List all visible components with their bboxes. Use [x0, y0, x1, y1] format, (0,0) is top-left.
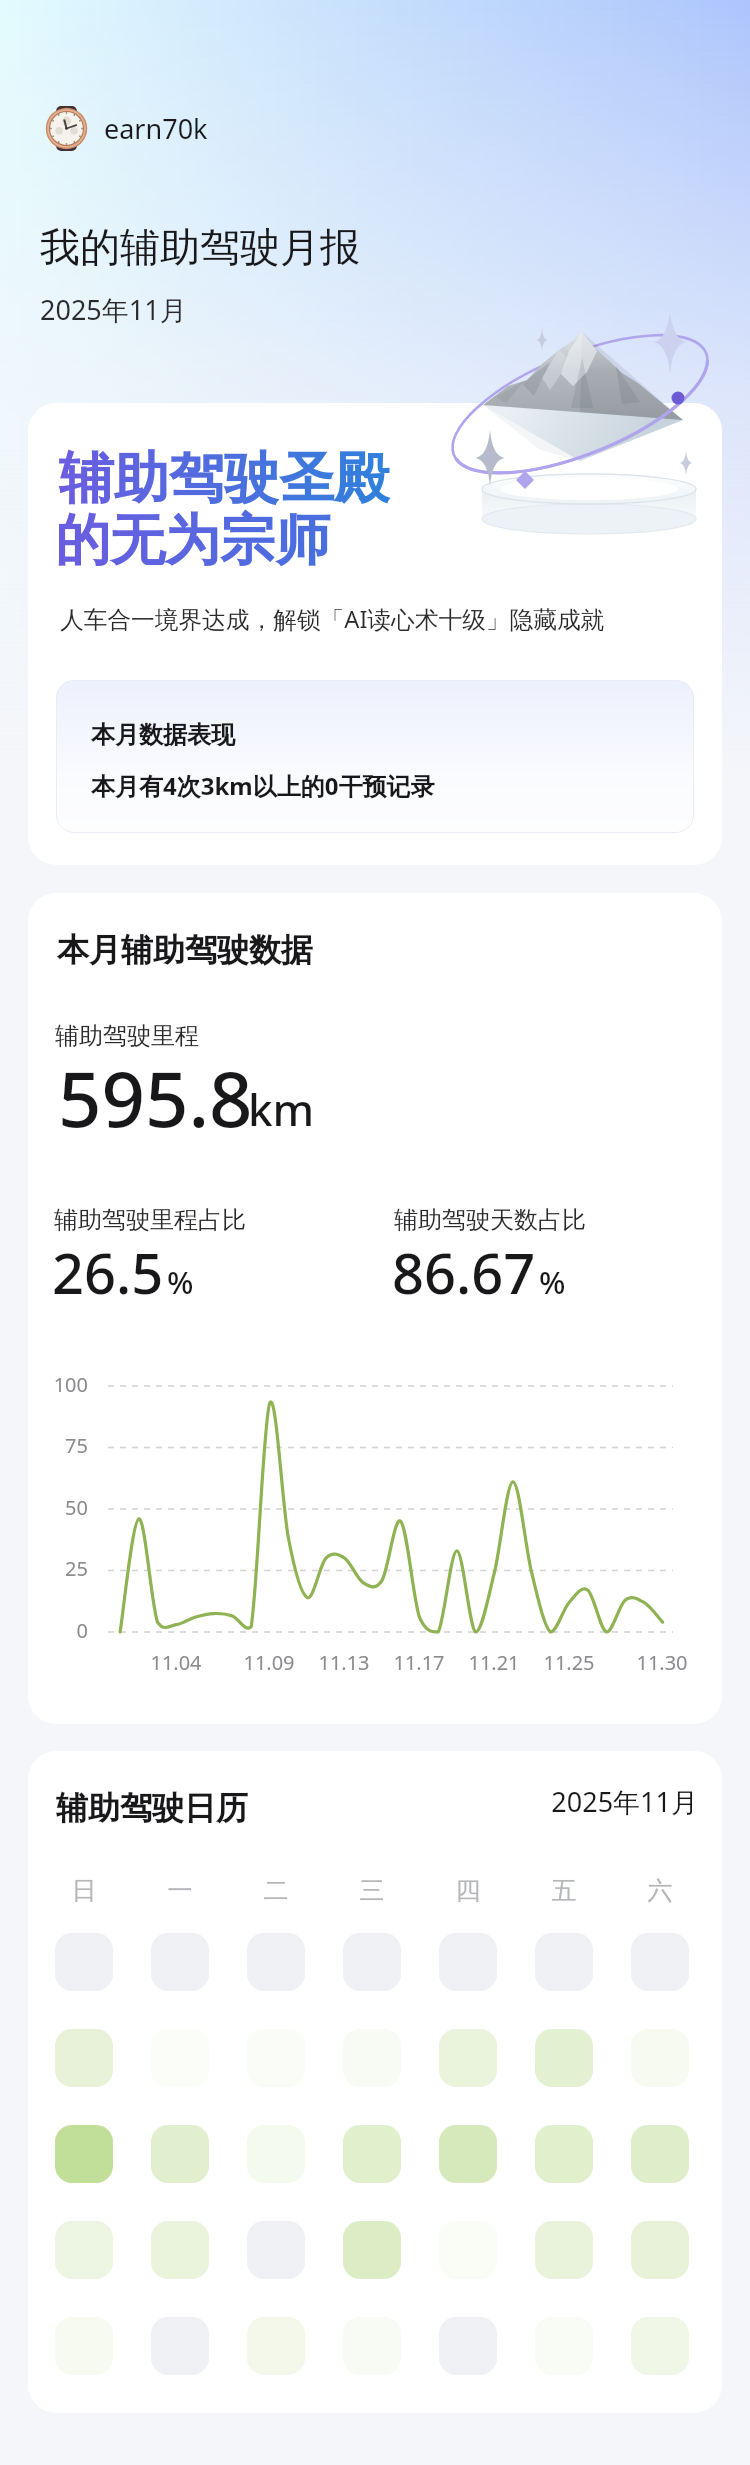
staticText: 辅助驾驶日历 [56, 1788, 248, 1828]
staticText: 26.5 [52, 1234, 164, 1310]
staticText: 辅助驾驶里程 [55, 1021, 199, 1051]
button[interactable] [28, 893, 722, 1724]
staticText: 2025年11月 [398, 1783, 698, 1820]
staticText: 我的辅助驾驶月报 [40, 222, 360, 272]
staticText: km [248, 1079, 315, 1139]
button[interactable]: 本月数据表现 [56, 680, 694, 833]
staticText: 本月数据表现 [91, 720, 235, 750]
staticText: 二 [247, 1875, 305, 1906]
staticText: 2025年11月 [40, 291, 187, 328]
button[interactable] [28, 403, 722, 865]
staticText: 50 [18, 1494, 88, 1521]
staticText: 六 [631, 1875, 689, 1906]
staticText: 75 [18, 1432, 88, 1459]
staticText: 11.30 [612, 1649, 712, 1676]
staticText: 人车合一境界达成，解锁「AI读心术十级」隐藏成就 [60, 603, 605, 635]
staticText: 11.09 [219, 1649, 319, 1676]
staticText: 11.17 [369, 1649, 469, 1676]
staticText: 一 [151, 1875, 209, 1906]
staticText: 86.67 [392, 1234, 536, 1310]
staticText: 595.8 [58, 1046, 253, 1150]
staticText: 辅助驾驶圣殿 [59, 444, 389, 513]
staticText: 辅助驾驶里程占比 [54, 1205, 246, 1235]
staticText: 四 [439, 1875, 497, 1906]
staticText: % [167, 1261, 194, 1303]
staticText: 三 [343, 1875, 401, 1906]
staticText: 的无为宗师 [55, 506, 330, 575]
staticText: earn70k [104, 110, 208, 147]
button[interactable]: Profile avatar [44, 106, 208, 151]
staticText: 五 [535, 1875, 593, 1906]
staticText: 本月辅助驾驶数据 [57, 930, 313, 970]
staticText: % [539, 1261, 566, 1303]
staticText: 11.25 [519, 1649, 619, 1676]
staticText: 辅助驾驶天数占比 [394, 1205, 586, 1235]
staticText: 11.21 [444, 1649, 544, 1676]
other: Profile avatar [44, 106, 89, 151]
button[interactable] [28, 1751, 722, 2413]
staticText: 日 [55, 1875, 113, 1906]
staticText: 11.04 [126, 1649, 226, 1676]
staticText: 本月有4次3km以上的0干预记录 [91, 769, 435, 802]
staticText: 25 [18, 1555, 88, 1582]
staticText: 0 [18, 1617, 88, 1644]
staticText: 100 [18, 1371, 88, 1398]
staticText: 11.13 [294, 1649, 394, 1676]
